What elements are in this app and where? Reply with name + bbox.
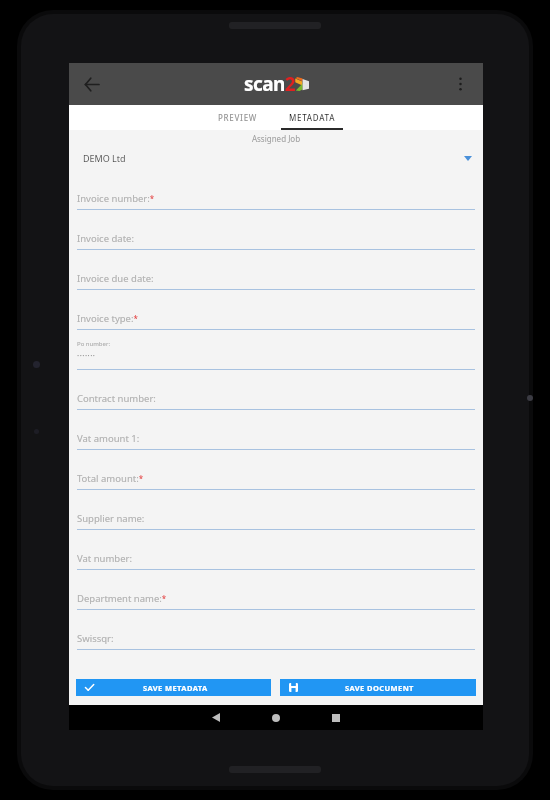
button[interactable]: Vat number: [77, 532, 475, 572]
button[interactable]: PREVIEW [209, 105, 267, 130]
button[interactable]: Po number: [77, 332, 475, 372]
button[interactable]: Vat amount 1: [77, 412, 475, 452]
staticText: PREVIEW [218, 112, 258, 123]
button[interactable]: Total amount:* [77, 452, 475, 492]
staticText: DEMO Ltd [83, 152, 126, 164]
button[interactable]: DEMO Ltd [83, 148, 472, 168]
button[interactable]: Home [246, 705, 306, 730]
staticText: Total amount:* [77, 472, 144, 485]
button[interactable]: Department name:* [77, 572, 475, 612]
staticText: Vat amount 1: [77, 432, 140, 445]
staticText: Invoice due date: [77, 272, 154, 285]
button[interactable]: Back [186, 705, 246, 730]
button[interactable]: Supplier name: [77, 492, 475, 532]
staticText: ······· [77, 350, 96, 361]
staticText: Invoice number:* [77, 192, 155, 205]
button[interactable]: Swissqr: [77, 612, 475, 652]
staticText: scan2 [244, 71, 295, 97]
staticText: Contract number: [77, 392, 156, 405]
staticText: Swissqr: [77, 632, 114, 645]
staticText: Department name:* [77, 592, 167, 605]
staticText: Invoice type:* [77, 312, 138, 325]
staticText: SAVE METADATA [143, 683, 208, 693]
button[interactable]: Invoice due date: [77, 252, 475, 292]
staticText: Assigned Job [69, 133, 483, 144]
button[interactable]: Invoice number:* [77, 172, 475, 212]
button[interactable]: Recents [306, 705, 366, 730]
button[interactable]: Invoice type:* [77, 292, 475, 332]
staticText: Invoice date: [77, 232, 135, 245]
button[interactable]: SAVE METADATA [76, 679, 271, 696]
button[interactable]: Invoice date: [77, 212, 475, 252]
button[interactable]: METADATA [281, 105, 343, 130]
button[interactable]: More options [443, 67, 477, 101]
staticText: METADATA [289, 112, 336, 123]
button[interactable]: SAVE DOCUMENT [280, 679, 476, 696]
staticText: Vat number: [77, 552, 133, 565]
staticText: Supplier name: [77, 512, 145, 525]
button[interactable]: Back [74, 67, 108, 101]
staticText: SAVE DOCUMENT [345, 683, 414, 693]
button[interactable]: Contract number: [77, 372, 475, 412]
staticText: Po number: [77, 340, 111, 348]
